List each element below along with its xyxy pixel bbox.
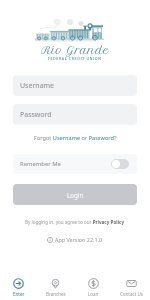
staticText: Password — [20, 110, 52, 120]
staticText: Username — [20, 81, 55, 91]
staticText: Rio Grande — [41, 44, 109, 57]
staticText: Loan — [88, 291, 99, 297]
staticText: Login — [67, 191, 84, 199]
button[interactable]: Loan — [74, 274, 112, 300]
button[interactable]: By logging in, you agree to our Privacy … — [25, 219, 125, 225]
staticText: FEDERAL CREDIT UNION — [48, 56, 102, 61]
button[interactable]: Contact Us — [112, 274, 150, 300]
button[interactable]: Forgot Username or Password? — [34, 134, 117, 142]
button[interactable]: Password — [13, 104, 137, 125]
staticText: App Version 22.1.0 — [55, 236, 103, 243]
staticText: Contact Us — [120, 291, 143, 297]
button[interactable]: Enter — [0, 274, 37, 300]
staticText: Enter — [13, 291, 25, 297]
staticText: By logging in, you agree to our Privacy … — [25, 219, 125, 225]
staticText: Branches — [46, 291, 66, 297]
button[interactable]: Username — [13, 75, 137, 96]
button[interactable]: Remember Me — [13, 154, 137, 174]
button[interactable]: Login — [13, 184, 137, 205]
staticText: Forgot Username or Password? — [34, 134, 117, 142]
staticText: Remember Me — [20, 160, 61, 168]
button[interactable]: Branches — [37, 274, 74, 300]
